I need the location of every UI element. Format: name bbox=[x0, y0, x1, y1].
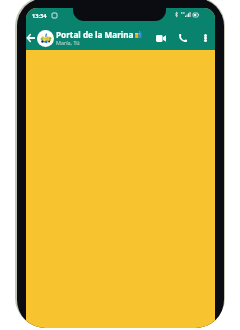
button[interactable]: More options bbox=[196, 29, 214, 47]
staticText: Portal de la Marina bbox=[56, 29, 134, 40]
button[interactable]: Video call bbox=[151, 28, 171, 48]
button[interactable]: Call bbox=[173, 28, 193, 48]
button[interactable]: Back bbox=[26, 28, 41, 48]
staticText: 13:34 bbox=[32, 12, 47, 20]
button[interactable]: Profile photo bbox=[37, 30, 54, 47]
staticText: María, Tú bbox=[56, 39, 80, 46]
